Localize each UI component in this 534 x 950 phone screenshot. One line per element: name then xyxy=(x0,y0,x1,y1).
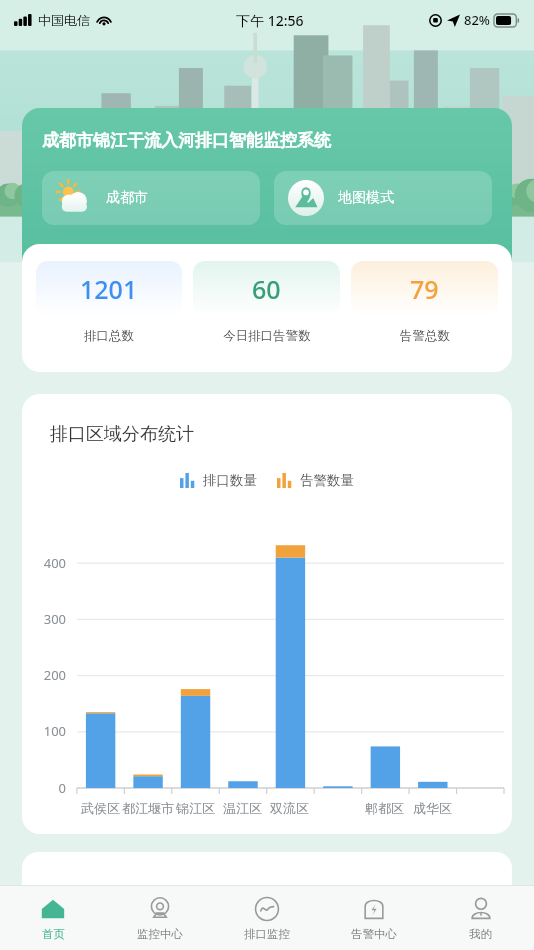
button[interactable]: 成都市 xyxy=(42,171,260,225)
staticText: 武侯区 xyxy=(81,800,120,816)
button[interactable]: 首页 xyxy=(0,886,106,950)
staticText: 监控中心 xyxy=(137,927,183,941)
staticText: 今日排口告警数 xyxy=(223,328,311,344)
button[interactable]: 我的 xyxy=(427,886,534,950)
other: 监控中心 xyxy=(147,896,173,922)
staticText: 成华区 xyxy=(413,800,452,816)
other: 排口监控 xyxy=(254,896,280,922)
staticText: 100 xyxy=(43,722,66,740)
staticText: 双流区 xyxy=(270,800,309,816)
staticText: 成都市锦江干流入河排口智能监控系统 xyxy=(42,130,331,151)
staticText: 告警中心 xyxy=(351,927,397,941)
staticText: 60 xyxy=(252,272,281,306)
staticText: 79 xyxy=(410,272,439,306)
staticText: 郫都区 xyxy=(365,800,404,816)
other: 首页 xyxy=(40,896,66,922)
staticText: 1201 xyxy=(80,272,138,306)
staticText: 告警总数 xyxy=(400,328,450,344)
staticText: 地图模式 xyxy=(338,189,394,207)
other: 我的 xyxy=(468,896,494,922)
staticText: 锦江区 xyxy=(176,800,215,816)
staticText: 排口区域分布统计 xyxy=(50,423,194,446)
button[interactable]: 地图模式 xyxy=(274,171,492,225)
button[interactable]: 1201 xyxy=(36,261,182,344)
staticText: 温江区 xyxy=(223,800,262,816)
button[interactable]: 79 xyxy=(351,261,498,344)
staticText: 0 xyxy=(58,779,66,797)
button[interactable]: 排口监控 xyxy=(213,886,320,950)
staticText: 成都市 xyxy=(106,189,148,207)
staticText: 下午 12:56 xyxy=(236,11,304,30)
staticText: 82% xyxy=(464,11,490,29)
staticText: 200 xyxy=(43,666,66,684)
other: 告警中心 xyxy=(361,896,387,922)
staticText: 首页 xyxy=(42,927,65,941)
staticText: 中国电信 xyxy=(38,12,90,28)
staticText: 都江堰市 xyxy=(122,800,174,816)
staticText: 告警数量 xyxy=(300,472,354,489)
button[interactable]: 告警中心 xyxy=(320,886,427,950)
button[interactable]: 60 xyxy=(193,261,340,344)
button[interactable]: 监控中心 xyxy=(106,886,213,950)
staticText: 排口总数 xyxy=(84,328,134,344)
staticText: 300 xyxy=(43,610,66,628)
staticText: 400 xyxy=(43,554,66,572)
staticText: 排口数量 xyxy=(203,472,257,489)
staticText: 我的 xyxy=(469,927,492,941)
staticText: 排口监控 xyxy=(244,927,290,941)
